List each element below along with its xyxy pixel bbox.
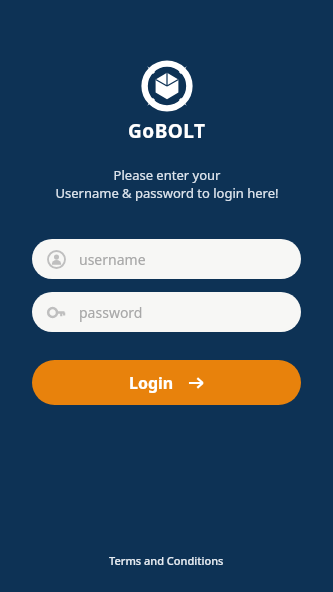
button[interactable]: password [32,292,301,332]
button[interactable]: username [32,239,301,279]
button[interactable]: Login [32,360,301,405]
staticText: Please enter your Username & password to… [55,166,279,202]
staticText: password [79,303,143,322]
staticText: username [79,250,146,269]
button[interactable]: Terms and Conditions [97,547,236,574]
staticText: Terms and Conditions [109,553,224,568]
staticText: GoBOLT [128,118,206,144]
staticText: Login [129,372,174,394]
